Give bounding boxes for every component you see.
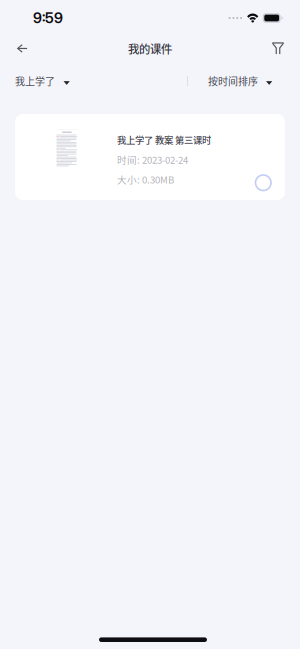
button[interactable]: 我上学了 教案 第三课时 [15,114,285,200]
staticText: 9:59 [33,9,63,27]
staticText: 按时间排序 [208,74,258,88]
staticText: 我上学了 教案 第三课时 [117,133,211,146]
button[interactable]: Filter [265,36,300,60]
staticText: 时间: 2023-02-24 [117,152,188,166]
staticText: 我上学了 [15,74,55,88]
button[interactable]: 按时间排序 [0,64,298,98]
staticText: 我的课件 [128,40,172,57]
staticText: 大小: 0.30MB [117,172,174,186]
button[interactable]: Back [0,36,36,60]
button[interactable]: 我上学了 [0,64,82,98]
